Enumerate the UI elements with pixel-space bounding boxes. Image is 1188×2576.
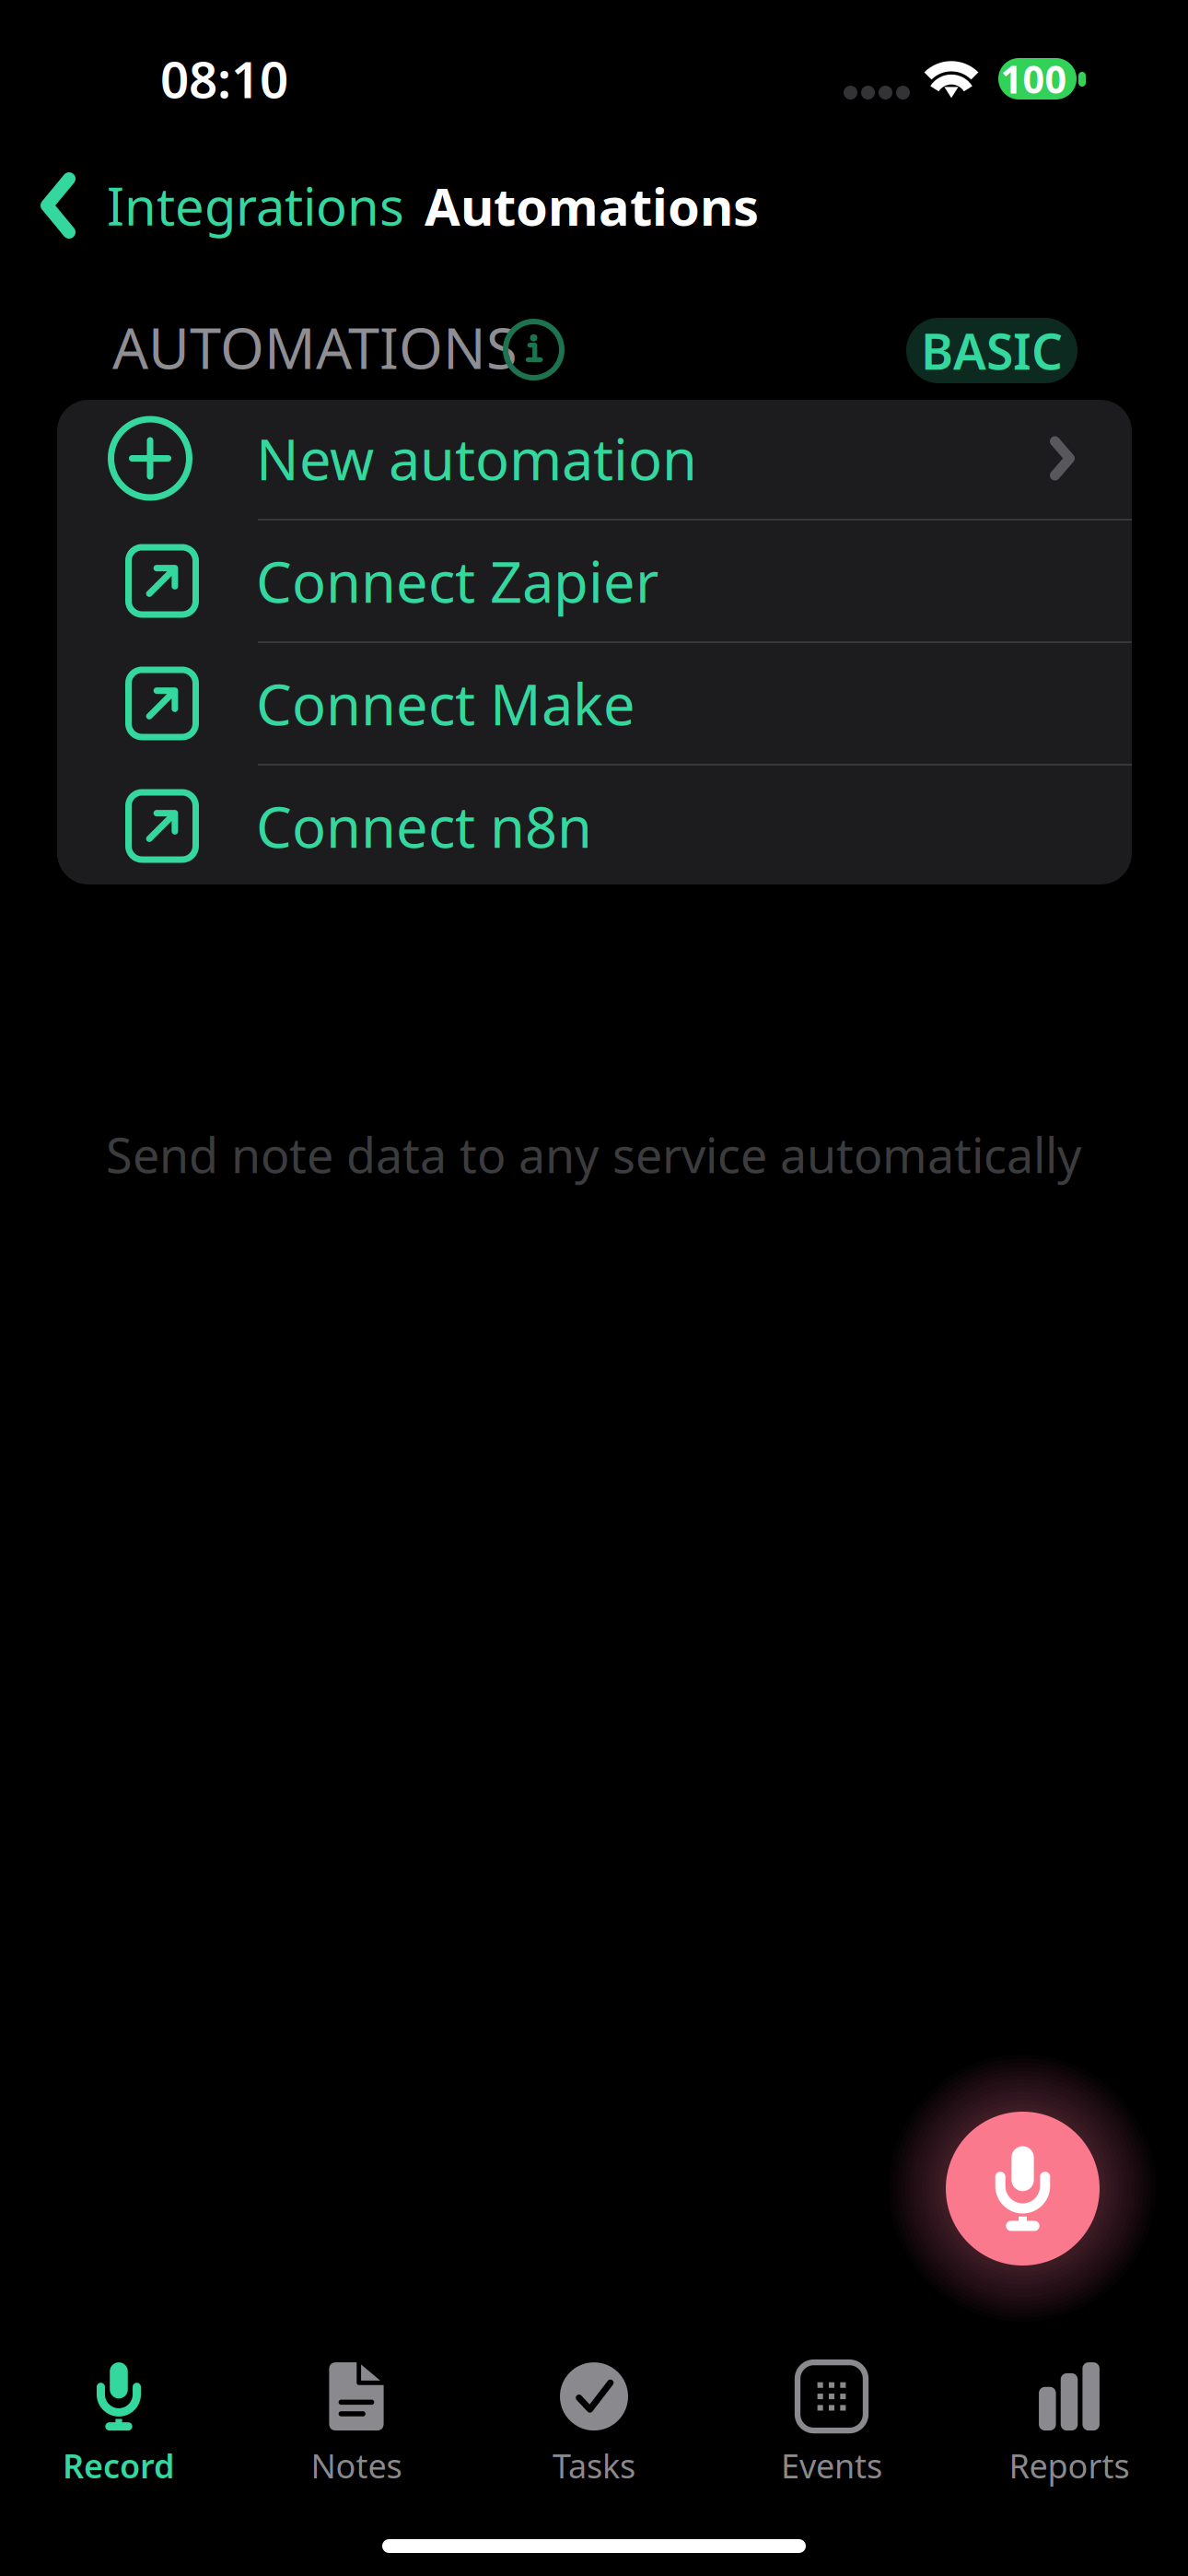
button[interactable]: Connect Zapier: [57, 521, 1132, 641]
staticText: Connect Zapier: [256, 543, 658, 618]
staticText: Tasks: [553, 2443, 635, 2487]
button[interactable]: Notes: [238, 2355, 475, 2493]
staticText: Connect Make: [256, 666, 635, 741]
staticText: Record: [63, 2443, 175, 2487]
button[interactable]: Record: [0, 2355, 238, 2493]
staticText: Send note data to any service automatica…: [106, 1123, 1082, 1186]
button[interactable]: Events: [713, 2355, 950, 2493]
button[interactable]: Record: [946, 2112, 1100, 2266]
button[interactable]: Integrations: [0, 158, 423, 253]
button[interactable]: Reports: [950, 2355, 1188, 2493]
staticText: New automation: [256, 421, 697, 496]
staticText: Integrations: [107, 171, 404, 240]
staticText: Notes: [311, 2443, 402, 2487]
button[interactable]: Connect n8n: [57, 766, 1132, 886]
staticText: 100: [1001, 54, 1067, 104]
staticText: Connect n8n: [256, 788, 592, 863]
button[interactable]: Connect Make: [57, 643, 1132, 764]
button[interactable]: New automation: [57, 398, 1132, 519]
staticText: Automations: [425, 171, 759, 240]
button[interactable]: BASIC: [906, 318, 1077, 383]
button[interactable]: About automations: [496, 312, 571, 387]
staticText: Reports: [1009, 2443, 1130, 2487]
staticText: Events: [781, 2443, 882, 2487]
staticText: AUTOMATIONS: [112, 310, 518, 385]
staticText: BASIC: [921, 318, 1063, 383]
staticText: 08:10: [160, 45, 288, 112]
button[interactable]: Tasks: [475, 2355, 713, 2493]
